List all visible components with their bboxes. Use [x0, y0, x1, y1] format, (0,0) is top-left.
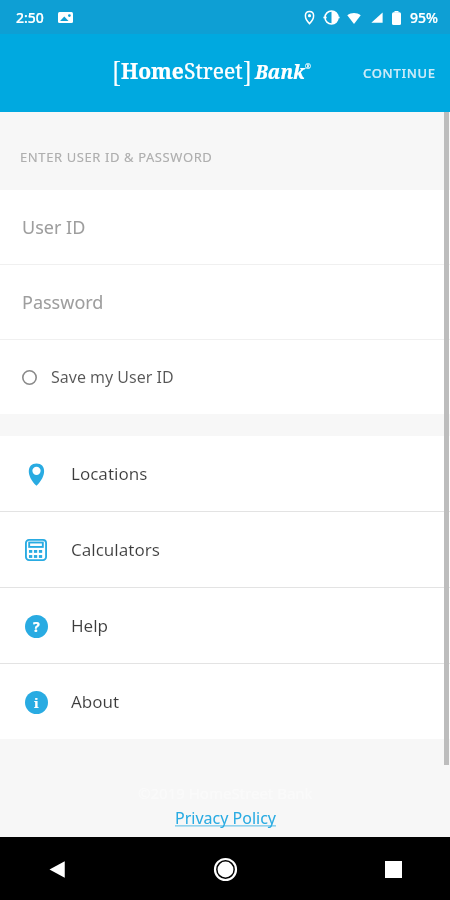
button[interactable]: Locations: [0, 436, 450, 511]
button[interactable]: Password: [0, 265, 450, 339]
staticText: Privacy Policy: [175, 807, 276, 829]
staticText: Save my User ID: [51, 366, 174, 388]
button[interactable]: i: [0, 664, 450, 739]
button[interactable]: User ID: [0, 190, 450, 264]
staticText: ?: [33, 617, 40, 636]
staticText: 95%: [410, 8, 438, 27]
button[interactable]: Recent apps: [370, 846, 416, 892]
staticText: About: [71, 690, 120, 713]
button[interactable]: Calculators: [0, 512, 450, 587]
staticText: Help: [71, 614, 109, 637]
staticText: ]: [243, 53, 252, 90]
button[interactable]: Back: [34, 846, 80, 892]
button[interactable]: CONTINUE: [349, 52, 450, 94]
staticText: Calculators: [71, 538, 160, 561]
staticText: 2:50: [16, 8, 44, 27]
staticText: Street: [184, 57, 243, 86]
button[interactable]: ?: [0, 588, 450, 663]
button[interactable]: Home: [202, 846, 248, 892]
staticText: ®: [305, 62, 311, 72]
staticText: Password: [22, 290, 104, 315]
staticText: User ID: [22, 215, 86, 240]
button[interactable]: Privacy Policy: [175, 807, 276, 829]
staticText: [: [112, 53, 121, 90]
staticText: Locations: [71, 462, 148, 485]
staticText: i: [34, 694, 39, 712]
staticText: Bank: [255, 59, 305, 85]
staticText: CONTINUE: [363, 64, 436, 82]
staticText: ENTER USER ID & PASSWORD: [20, 148, 213, 166]
staticText: Home: [121, 57, 184, 86]
button[interactable]: Save my User ID: [0, 340, 450, 414]
